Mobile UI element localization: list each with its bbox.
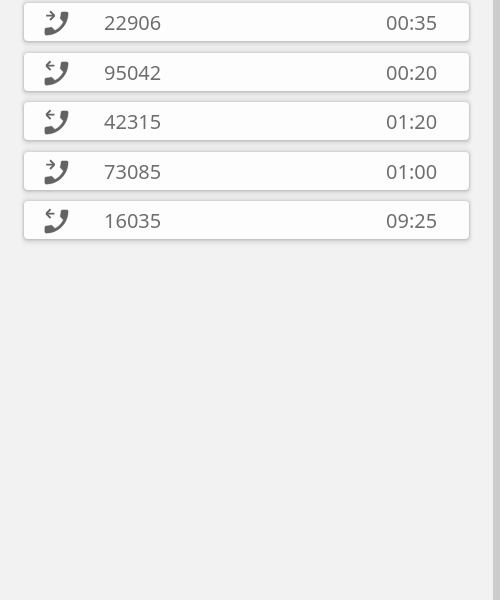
staticText: 42315: [104, 108, 162, 135]
staticText: 09:25: [386, 207, 438, 234]
staticText: 95042: [104, 59, 162, 86]
other: Outgoing call: [41, 157, 72, 188]
other: Incoming call: [41, 206, 72, 237]
other: Incoming call: [41, 58, 72, 89]
staticText: 22906: [104, 9, 162, 36]
other: Incoming call: [41, 107, 72, 138]
staticText: 00:20: [386, 59, 438, 86]
button[interactable]: Outgoing call: [24, 3, 469, 41]
button[interactable]: Outgoing call: [24, 152, 469, 190]
staticText: 00:35: [386, 9, 438, 36]
button[interactable]: Incoming call: [24, 102, 469, 140]
staticText: 73085: [104, 158, 162, 185]
button[interactable]: Incoming call: [24, 53, 469, 91]
button[interactable]: Incoming call: [24, 201, 469, 239]
staticText: 01:00: [386, 158, 438, 185]
other: Outgoing call: [41, 8, 72, 39]
staticText: 16035: [104, 207, 162, 234]
staticText: 01:20: [386, 108, 438, 135]
